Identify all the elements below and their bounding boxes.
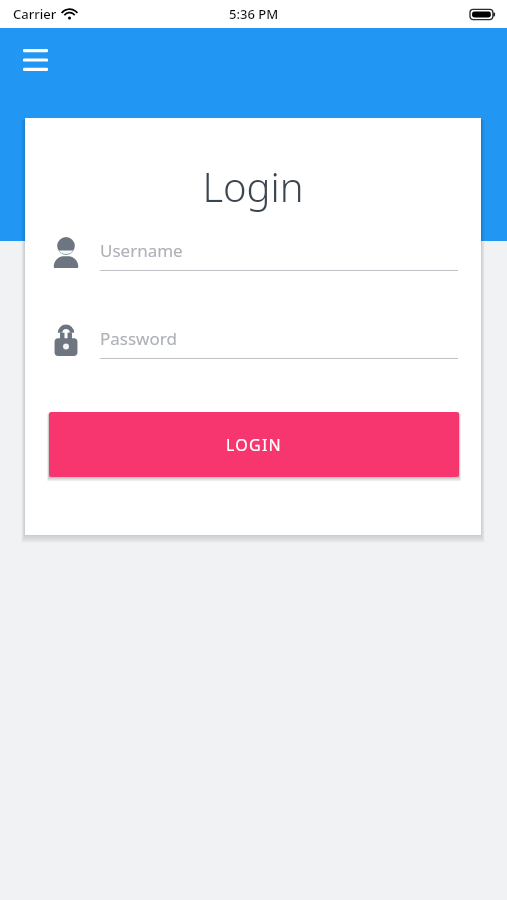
- staticText: LOGIN: [226, 434, 282, 456]
- button[interactable]: Open navigation menu: [13, 41, 57, 79]
- button[interactable]: Username: [25, 230, 481, 298]
- staticText: Login: [202, 159, 304, 213]
- staticText: 5:36 PM: [229, 5, 279, 23]
- button[interactable]: Password: [25, 318, 481, 386]
- staticText: Carrier: [13, 5, 57, 23]
- staticText: Username: [100, 239, 183, 262]
- staticText: Password: [100, 327, 177, 350]
- button[interactable]: LOGIN: [49, 412, 459, 477]
